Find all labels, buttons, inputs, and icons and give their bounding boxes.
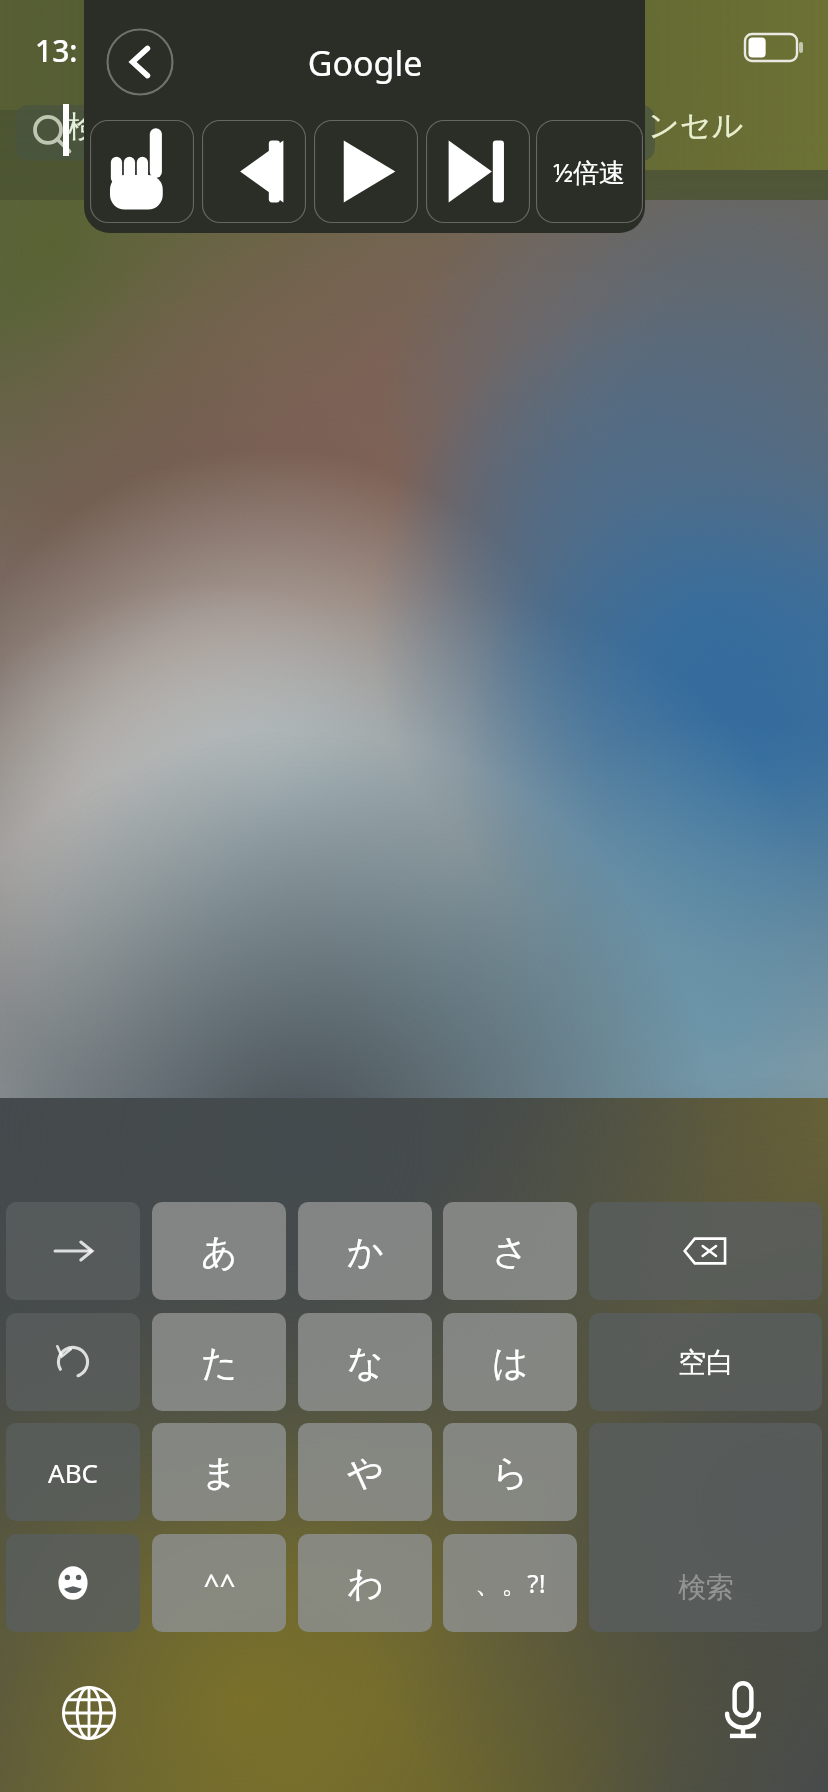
button[interactable]: ABC (6, 1423, 140, 1521)
button[interactable]: Undo (6, 1313, 140, 1411)
staticText: 13: (35, 30, 78, 71)
button[interactable]: Delete (589, 1202, 822, 1300)
staticText: Google (220, 40, 510, 86)
button[interactable]: や (298, 1423, 432, 1521)
button[interactable]: た (152, 1313, 286, 1411)
button[interactable]: Back (106, 28, 174, 96)
button[interactable]: 、。?! (443, 1534, 577, 1632)
button[interactable]: Next candidate (6, 1202, 140, 1300)
staticText: は (492, 1340, 529, 1385)
staticText: 検 (68, 108, 98, 146)
button[interactable]: Half speed (536, 120, 643, 223)
button[interactable]: Switch keyboard (57, 1681, 121, 1745)
staticText: ABC (48, 1455, 98, 1490)
staticText: ら (492, 1450, 529, 1495)
staticText: や (347, 1450, 384, 1495)
staticText: 空白 (678, 1345, 734, 1380)
button[interactable] (15, 105, 655, 161)
other: Search (26, 107, 76, 159)
button[interactable]: あ (152, 1202, 286, 1300)
button[interactable]: ンセル (648, 106, 744, 145)
staticText: さ (492, 1229, 529, 1274)
button[interactable]: Voice input (712, 1676, 774, 1738)
button[interactable]: 検索 (589, 1423, 822, 1632)
staticText: か (347, 1229, 384, 1274)
button[interactable]: わ (298, 1534, 432, 1632)
button[interactable]: Next (426, 120, 530, 223)
button[interactable]: な (298, 1313, 432, 1411)
button[interactable]: ^^ (152, 1534, 286, 1632)
button[interactable]: Tap gesture (90, 120, 194, 223)
button[interactable]: か (298, 1202, 432, 1300)
button[interactable]: 空白 (589, 1313, 822, 1411)
staticText: わ (347, 1561, 384, 1606)
staticText: ま (201, 1450, 238, 1495)
button[interactable]: Emoji (6, 1534, 140, 1632)
button[interactable]: Play (314, 120, 418, 223)
button[interactable]: ま (152, 1423, 286, 1521)
staticText: ^^ (203, 1564, 236, 1602)
staticText: あ (201, 1229, 238, 1274)
staticText: 、。?! (475, 1565, 546, 1601)
staticText: な (347, 1340, 384, 1385)
button[interactable]: さ (443, 1202, 577, 1300)
button[interactable]: は (443, 1313, 577, 1411)
staticText: 検索 (678, 1570, 734, 1605)
button[interactable]: ら (443, 1423, 577, 1521)
staticText: ½倍速 (553, 154, 626, 190)
button[interactable]: Previous (202, 120, 306, 223)
staticText: た (201, 1340, 238, 1385)
